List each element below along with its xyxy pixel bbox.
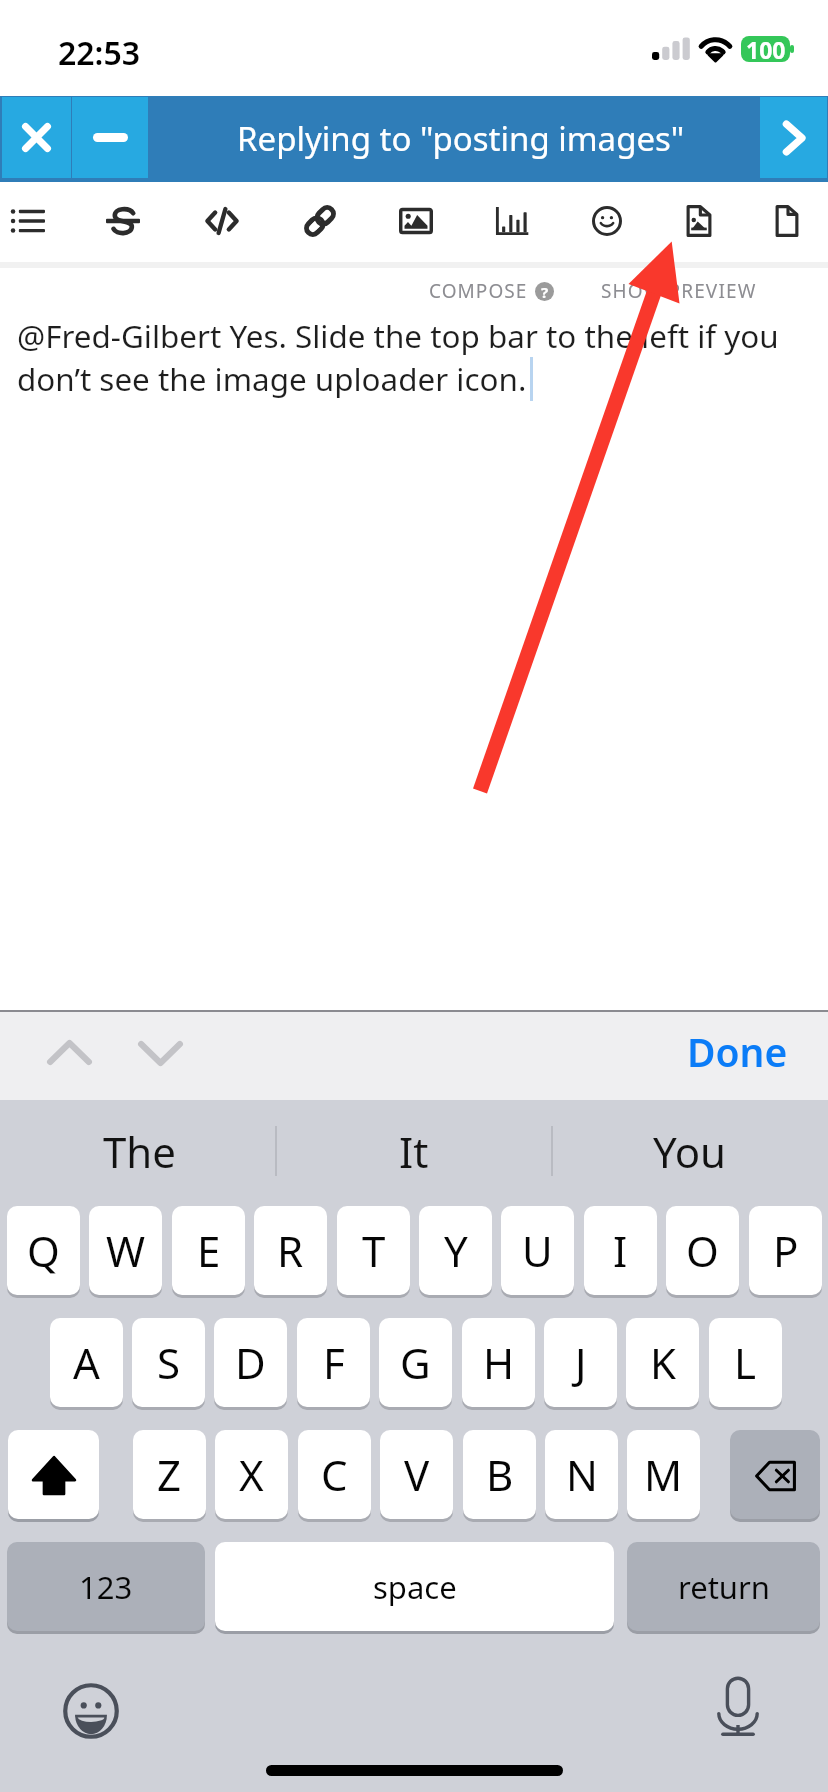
staticText: @Fred-Gilbert Yes. Slide the top bar to … [17,314,812,400]
button[interactable]: COMPOSE [420,272,560,310]
staticText: M [644,1446,683,1503]
button[interactable]: Poll [469,182,555,262]
button[interactable]: Code [179,182,265,262]
staticText: X [239,1446,264,1503]
staticText: Z [157,1446,182,1503]
staticText: P [773,1222,799,1279]
staticText: J [575,1334,587,1391]
button[interactable]: You [570,1110,810,1192]
staticText: S [157,1334,181,1391]
staticText: O [686,1222,719,1279]
staticText: return [678,1566,770,1608]
staticText: A [73,1334,100,1391]
button[interactable]: S [132,1318,205,1407]
button[interactable]: Image [373,182,459,262]
button[interactable]: The [19,1110,259,1192]
button[interactable]: Bulleted list [0,182,71,262]
button[interactable]: D [214,1318,287,1407]
staticText: D [235,1334,266,1391]
button[interactable]: M [627,1430,700,1519]
staticText: SHOW PREVIEW [601,278,757,304]
button[interactable]: Emoji keyboard [59,1679,123,1743]
button[interactable]: O [666,1206,739,1295]
button[interactable]: Next field [124,1014,196,1092]
button[interactable]: W [89,1206,162,1295]
button[interactable]: Next [760,97,827,178]
staticText: W [106,1222,146,1279]
staticText: I [613,1222,628,1279]
staticText: 22:53 [58,31,141,75]
button[interactable]: F [297,1318,370,1407]
button[interactable]: G [379,1318,452,1407]
staticText: F [323,1334,345,1391]
staticText: C [321,1446,348,1503]
button[interactable]: Dictation [706,1675,770,1739]
button[interactable]: Z [133,1430,206,1519]
staticText: It [399,1123,429,1180]
staticText: N [566,1446,598,1503]
button[interactable]: Q [7,1206,80,1295]
staticText: COMPOSE [429,278,528,304]
button[interactable]: SHOW PREVIEW [594,272,764,310]
staticText: K [650,1334,676,1391]
staticText: Q [27,1222,60,1279]
button[interactable]: P [749,1206,822,1295]
staticText: V [404,1446,430,1503]
staticText: You [653,1123,727,1180]
button[interactable]: Backspace [730,1430,820,1519]
button[interactable]: K [626,1318,699,1407]
button[interactable]: Minimize [72,97,148,178]
staticText: U [522,1222,553,1279]
button[interactable]: return [627,1542,820,1631]
staticText: 100 [746,36,786,60]
button[interactable]: 123 [7,1542,205,1631]
button[interactable]: N [545,1430,618,1519]
button[interactable]: Y [419,1206,492,1295]
staticText: E [197,1222,221,1279]
staticText: B [486,1446,514,1503]
button[interactable]: V [380,1430,453,1519]
staticText: Done [687,1025,788,1078]
staticText: 123 [79,1566,133,1608]
staticText: G [400,1334,431,1391]
staticText: The [103,1123,176,1180]
staticText: Replying to "posting images" [237,116,685,161]
staticText: ? [541,282,549,301]
button[interactable]: X [215,1430,288,1519]
button[interactable]: Emoji [564,182,650,262]
staticText: Y [444,1222,468,1279]
button[interactable]: Shift [8,1430,99,1519]
button[interactable]: H [462,1318,535,1407]
button[interactable]: B [463,1430,536,1519]
button[interactable]: space [215,1542,614,1631]
staticText: L [734,1334,757,1391]
button[interactable]: L [709,1318,782,1407]
staticText: space [373,1566,457,1608]
button[interactable]: Upload image [656,182,742,262]
staticText: H [483,1334,515,1391]
button[interactable]: T [337,1206,410,1295]
button[interactable]: Done [674,1014,800,1088]
button[interactable]: Strikethrough [80,182,166,262]
staticText: T [362,1222,386,1279]
button[interactable]: E [172,1206,245,1295]
button[interactable]: R [254,1206,327,1295]
button[interactable]: A [50,1318,123,1407]
button[interactable]: I [584,1206,657,1295]
button[interactable]: U [501,1206,574,1295]
button[interactable]: Close [2,97,71,178]
button[interactable]: Attach document [744,182,828,262]
button[interactable]: J [544,1318,617,1407]
staticText: R [277,1222,304,1279]
button[interactable]: Previous field [33,1013,105,1091]
button[interactable]: C [298,1430,371,1519]
button[interactable]: Link [277,182,363,262]
button[interactable]: It [294,1110,534,1192]
